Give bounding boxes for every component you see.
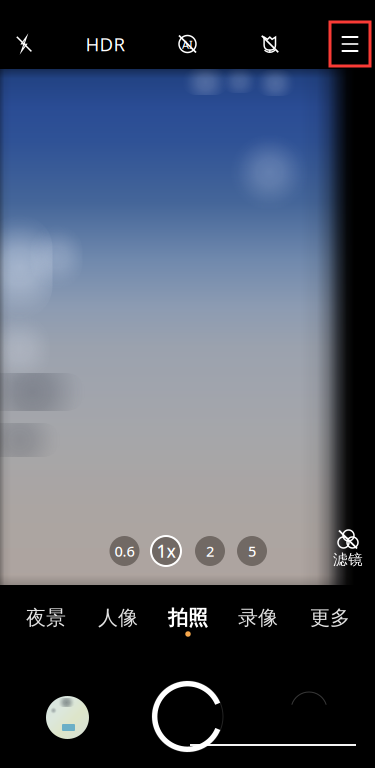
button[interactable]: HDR <box>82 22 128 66</box>
staticText: 录像 <box>238 605 278 630</box>
button[interactable]: 夜景 <box>15 602 77 642</box>
button[interactable]: 人像 <box>87 602 149 642</box>
button[interactable]: Flash off <box>1 22 47 66</box>
button[interactable]: Gallery <box>46 696 89 739</box>
staticText: AI <box>182 37 193 52</box>
button[interactable]: Shutter <box>149 678 225 754</box>
button[interactable]: Settings <box>330 22 370 66</box>
staticText: 拍照 <box>168 605 208 630</box>
button[interactable]: Motion photo off <box>247 22 293 66</box>
staticText: 2 <box>206 541 214 561</box>
staticText: HDR <box>85 32 125 56</box>
button[interactable]: 更多 <box>299 602 361 642</box>
staticText: 更多 <box>310 605 350 630</box>
button[interactable]: 录像 <box>227 602 289 642</box>
staticText: 5 <box>248 541 256 561</box>
staticText: 人像 <box>98 605 138 630</box>
button[interactable]: 0.6 <box>107 534 141 568</box>
button[interactable]: 1x <box>149 534 183 568</box>
button[interactable]: AI scene detection off <box>164 22 210 66</box>
button[interactable]: 5 <box>235 534 269 568</box>
button[interactable]: Switch camera <box>289 690 329 730</box>
staticText: 夜景 <box>26 605 66 630</box>
button[interactable]: 滤镜 <box>326 529 370 569</box>
staticText: 1x <box>156 539 175 562</box>
staticText: 0.6 <box>114 541 134 561</box>
staticText: 滤镜 <box>333 550 363 568</box>
button[interactable]: 2 <box>193 534 227 568</box>
button[interactable]: 拍照 <box>157 602 219 642</box>
